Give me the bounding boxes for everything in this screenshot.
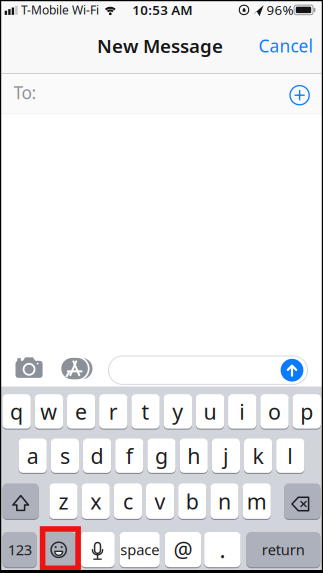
- button[interactable]: y: [164, 394, 192, 429]
- staticText: return: [262, 540, 305, 559]
- button[interactable]: Send: [281, 359, 303, 382]
- button[interactable]: t: [131, 394, 160, 429]
- button[interactable]: Shift: [3, 483, 39, 519]
- button[interactable]: m: [243, 483, 271, 519]
- button[interactable]: Apps: [60, 356, 92, 382]
- staticText: p: [300, 397, 313, 425]
- staticText: n: [218, 487, 231, 515]
- staticText: j: [223, 441, 229, 470]
- button[interactable]: a: [19, 438, 47, 473]
- staticText: l: [287, 441, 293, 470]
- button[interactable]: x: [82, 483, 110, 519]
- button[interactable]: Camera: [13, 355, 45, 383]
- staticText: c: [123, 487, 133, 515]
- staticText: f: [126, 441, 133, 470]
- button[interactable]: u: [196, 394, 224, 429]
- staticText: q: [10, 397, 23, 425]
- button[interactable]: w: [35, 394, 63, 429]
- staticText: h: [187, 441, 200, 470]
- button[interactable]: Numbers: [3, 532, 37, 567]
- staticText: 123: [8, 540, 32, 559]
- button[interactable]: @: [165, 532, 201, 567]
- button[interactable]: v: [146, 483, 174, 519]
- staticText: t: [142, 397, 150, 425]
- staticText: y: [172, 397, 183, 425]
- staticText: z: [58, 487, 68, 515]
- button[interactable]: Period: [204, 532, 241, 567]
- staticText: d: [91, 441, 104, 470]
- button[interactable]: r: [99, 394, 127, 429]
- button[interactable]: h: [180, 438, 208, 473]
- staticText: 10:53 AM: [132, 1, 192, 19]
- staticText: a: [27, 441, 39, 470]
- staticText: i: [239, 397, 245, 425]
- staticText: Cancel: [258, 34, 312, 57]
- button[interactable]: d: [83, 438, 111, 473]
- staticText: 96%: [266, 1, 293, 19]
- button[interactable]: e: [67, 394, 95, 429]
- button[interactable]: return: [246, 532, 320, 567]
- button[interactable]: Cancel: [248, 30, 322, 62]
- staticText: x: [90, 487, 101, 515]
- button[interactable]: k: [244, 438, 272, 473]
- staticText: m: [247, 487, 267, 515]
- staticText: To:: [13, 81, 36, 104]
- button[interactable]: s: [51, 438, 79, 473]
- staticText: s: [60, 441, 70, 470]
- staticText: space: [120, 540, 159, 559]
- button[interactable]: o: [260, 394, 289, 429]
- button[interactable]: l: [276, 438, 304, 473]
- button[interactable]: Add Contact: [287, 82, 313, 108]
- button[interactable]: f: [115, 438, 143, 473]
- staticText: o: [268, 397, 281, 425]
- button[interactable]: q: [2, 394, 31, 429]
- staticText: @: [173, 535, 192, 564]
- button[interactable]: space: [120, 532, 160, 567]
- button[interactable]: b: [178, 483, 206, 519]
- button[interactable]: g: [147, 438, 176, 473]
- button[interactable]: Delete: [284, 483, 320, 519]
- button[interactable]: Emoji: [42, 532, 76, 567]
- staticText: e: [75, 397, 87, 425]
- staticText: New Message: [97, 33, 223, 58]
- button[interactable]: c: [114, 483, 142, 519]
- staticText: u: [203, 397, 216, 425]
- staticText: b: [186, 487, 199, 515]
- button[interactable]: j: [212, 438, 240, 473]
- staticText: T-Mobile Wi-Fi: [21, 2, 99, 18]
- staticText: w: [40, 397, 57, 425]
- button[interactable]: Dictate: [81, 532, 115, 567]
- staticText: g: [155, 441, 168, 470]
- staticText: .: [219, 534, 225, 565]
- button[interactable]: p: [293, 394, 321, 429]
- button[interactable]: z: [49, 483, 78, 519]
- button[interactable]: n: [210, 483, 239, 519]
- staticText: r: [109, 397, 118, 425]
- button[interactable]: i: [228, 394, 256, 429]
- staticText: k: [253, 441, 264, 470]
- staticText: v: [155, 487, 166, 515]
